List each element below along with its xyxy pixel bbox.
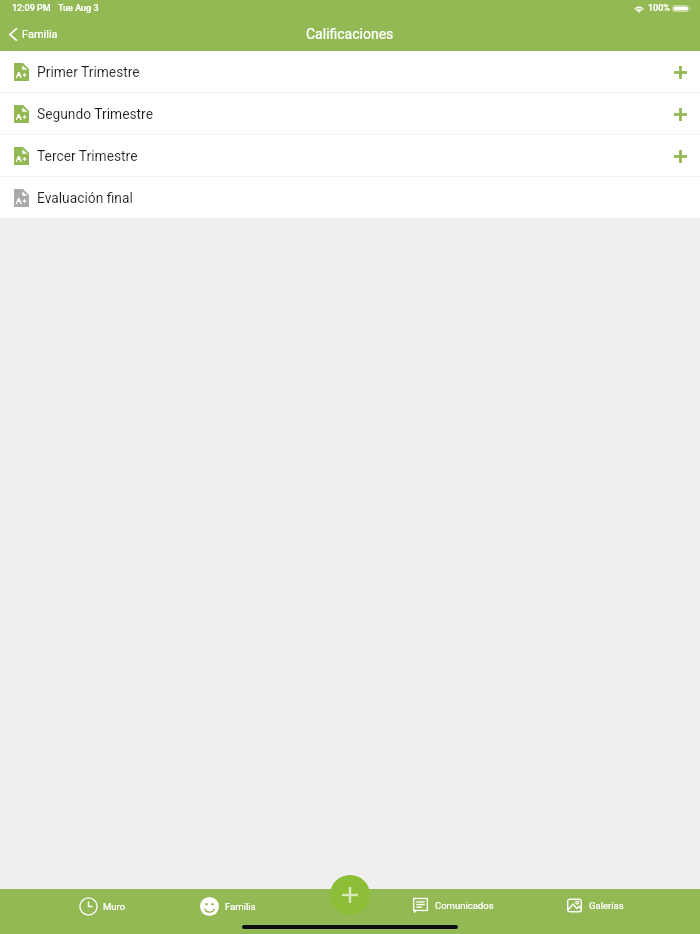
staticText: Primer Trimestre [37, 64, 140, 80]
button[interactable]: Añadir [666, 142, 694, 170]
button[interactable]: Muro [73, 895, 132, 918]
button[interactable]: Evaluación final [0, 177, 700, 218]
button[interactable]: Galerías [561, 896, 630, 915]
staticText: Segundo Trimestre [37, 106, 153, 122]
staticText: 100% [648, 3, 670, 14]
staticText: Familia [22, 28, 58, 41]
staticText: Familia [225, 901, 256, 912]
staticText: Evaluación final [37, 190, 133, 206]
button[interactable]: Añadir [666, 58, 694, 86]
staticText: Tercer Trimestre [37, 148, 138, 164]
staticText: Muro [103, 901, 126, 912]
button[interactable]: Add [330, 875, 370, 915]
staticText: Comunicados [435, 900, 494, 911]
staticText: Tue Aug 3 [58, 3, 99, 14]
staticText: 12:09 PM [12, 3, 51, 14]
button[interactable]: Familia [0, 22, 68, 47]
button[interactable]: Comunicados [407, 896, 500, 915]
button[interactable]: Tercer Trimestre [0, 135, 700, 176]
button[interactable]: Familia [194, 895, 262, 918]
button[interactable]: Añadir [666, 100, 694, 128]
staticText: Galerías [589, 900, 624, 911]
button[interactable]: Segundo Trimestre [0, 93, 700, 134]
button[interactable]: Primer Trimestre [0, 51, 700, 92]
staticText: Calificaciones [306, 26, 394, 42]
